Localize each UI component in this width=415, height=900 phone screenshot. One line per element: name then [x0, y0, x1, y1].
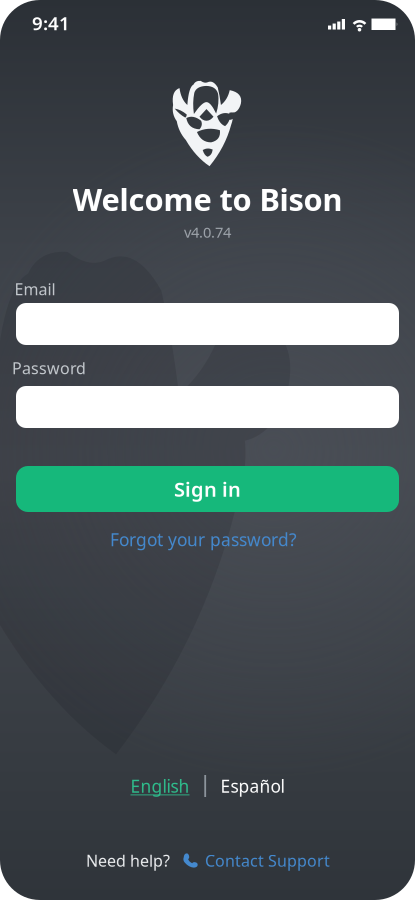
button[interactable]: Contact Support: [182, 850, 330, 871]
button[interactable]: Español: [220, 774, 284, 797]
staticText: Email: [14, 278, 55, 300]
staticText: Sign in: [174, 476, 241, 502]
button[interactable]: English: [130, 774, 189, 797]
button[interactable]: Sign in: [16, 466, 399, 512]
staticText: Español: [220, 774, 284, 797]
staticText: Welcome to Bison: [72, 179, 342, 219]
staticText: Password: [12, 357, 86, 379]
staticText: Forgot your password?: [110, 528, 297, 551]
staticText: English: [130, 774, 189, 797]
button[interactable]: Forgot your password?: [110, 528, 297, 551]
button[interactable]: Password: [16, 386, 399, 428]
staticText: Need help?: [86, 850, 170, 871]
staticText: 9:41: [32, 11, 70, 35]
staticText: v4.0.74: [184, 222, 231, 242]
button[interactable]: Email: [16, 303, 399, 345]
staticText: Contact Support: [205, 850, 330, 871]
